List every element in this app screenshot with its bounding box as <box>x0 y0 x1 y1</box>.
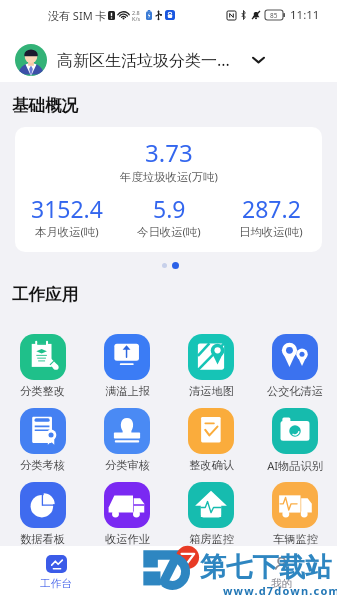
button[interactable]: 我的 <box>245 546 317 600</box>
staticText: 2.8 K/s <box>132 9 141 22</box>
staticText: AI物品识别 <box>267 458 323 473</box>
staticText: 3.73 <box>145 136 193 169</box>
button[interactable]: 车辆监控 <box>253 478 337 552</box>
button[interactable]: 整改确认 <box>169 404 253 478</box>
staticText: 第七下载站 <box>200 551 332 584</box>
staticText: 基础概况 <box>12 95 78 116</box>
staticText: 287.2 <box>242 193 301 224</box>
staticText: 11:11 <box>290 7 320 23</box>
staticText: 工作台 <box>40 577 72 590</box>
button[interactable]: 满溢上报 <box>85 330 169 404</box>
staticText: 分类审核 <box>105 458 150 472</box>
staticText: 今日收运(吨) <box>137 224 201 240</box>
staticText: 没有 SIM 卡 <box>48 8 107 23</box>
button[interactable]: 公交化清运 <box>253 330 337 404</box>
button[interactable]: AI物品识别 <box>253 404 337 478</box>
staticText: 年度垃圾收运(万吨) <box>120 169 218 185</box>
staticText: 数据看板 <box>20 532 65 546</box>
staticText: 箱房监控 <box>189 532 234 546</box>
staticText: 工作应用 <box>12 284 78 305</box>
staticText: 85 <box>270 11 278 20</box>
button[interactable]: 切换项目 <box>246 48 270 72</box>
staticText: 日均收运(吨) <box>239 224 303 240</box>
staticText: 清运地图 <box>189 384 234 398</box>
button[interactable]: 工作台 <box>20 546 92 600</box>
staticText: 分类整改 <box>20 384 65 398</box>
button[interactable]: 分类审核 <box>85 404 169 478</box>
staticText: 我的 <box>271 577 292 590</box>
staticText: 收运作业 <box>105 532 150 546</box>
button[interactable]: 数据看板 <box>0 478 85 552</box>
button[interactable]: 箱房监控 <box>169 478 253 552</box>
staticText: 满溢上报 <box>105 384 150 398</box>
button[interactable]: 分类考核 <box>0 404 85 478</box>
button[interactable]: 3.73 <box>15 127 322 252</box>
staticText: 车辆监控 <box>273 532 318 546</box>
button[interactable]: 清运地图 <box>169 330 253 404</box>
staticText: 本月收运(吨) <box>35 224 99 240</box>
staticText: 公交化清运 <box>267 384 323 398</box>
button[interactable]: 收运作业 <box>85 478 169 552</box>
staticText: www.d7down.com <box>223 583 337 598</box>
staticText: 整改确认 <box>189 458 234 472</box>
button[interactable]: 分类整改 <box>0 330 85 404</box>
button[interactable]: 个人头像 <box>15 44 47 76</box>
staticText: 5.9 <box>153 193 186 224</box>
staticText: 高新区生活垃圾分类一... <box>57 49 230 71</box>
staticText: 3152.4 <box>31 193 103 224</box>
staticText: 分类考核 <box>20 458 65 472</box>
